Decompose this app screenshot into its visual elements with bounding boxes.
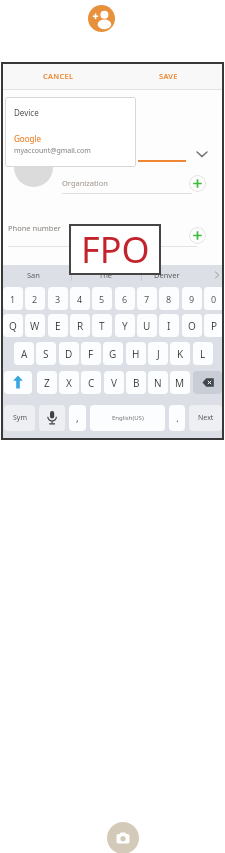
staticText: A [21,347,28,361]
staticText: B [133,376,140,390]
button[interactable]: Z [37,371,57,394]
button[interactable] [189,227,206,244]
button[interactable]: N [148,371,168,394]
staticText: Z [44,376,50,390]
staticText: Sym [13,413,27,423]
button[interactable]: A [14,342,34,365]
button[interactable]: English(US) [90,405,165,431]
staticText: Organization [62,178,108,188]
staticText: FPO [81,225,150,274]
staticText: P [211,319,218,333]
button[interactable]: D [59,342,79,365]
button[interactable]: S [36,342,56,365]
staticText: 8 [166,293,172,305]
button[interactable]: Google [5,129,136,167]
button[interactable]: I [159,314,179,337]
staticText: L [200,347,206,361]
staticText: 0 [211,293,217,305]
staticText: K [177,347,184,361]
button[interactable]: G [103,342,123,365]
button[interactable]: 1 [3,287,23,310]
staticText: , [76,411,79,425]
button[interactable]: The [84,266,128,284]
button[interactable]: X [59,371,79,394]
button[interactable]: J [148,342,168,365]
button[interactable]: Q [3,314,23,337]
staticText: 5 [99,293,105,305]
staticText: 6 [122,293,128,305]
staticText: J [157,347,160,361]
staticText: 4 [77,293,83,305]
staticText: T [99,319,105,333]
button[interactable]: Device [5,97,136,129]
button[interactable]: 9 [182,287,202,310]
staticText: myaccount@gmail.com [14,146,91,156]
button[interactable]: B [126,371,146,394]
button[interactable]: P [204,314,224,337]
staticText: N [154,376,162,390]
staticText: 9 [189,293,195,305]
button[interactable] [4,371,32,394]
staticText: U [143,319,151,333]
staticText: SAVE [159,71,178,81]
staticText: CANCEL [43,71,74,81]
button[interactable]: 7 [137,287,157,310]
button[interactable]: 6 [115,287,135,310]
button[interactable]: Denver [144,266,190,284]
button[interactable]: U [137,314,157,337]
button[interactable]: E [48,314,68,337]
button[interactable]: 3 [48,287,68,310]
button[interactable] [39,405,65,431]
staticText: X [66,376,72,390]
button[interactable]: 8 [159,287,179,310]
button[interactable]: . [169,405,185,431]
staticText: 2 [32,293,38,305]
staticText: M [175,376,185,390]
button[interactable]: W [25,314,45,337]
button[interactable]: 5 [92,287,112,310]
staticText: Phone number [8,223,61,233]
button[interactable]: San [11,266,55,284]
button[interactable]: V [104,371,124,394]
staticText: Denver [154,270,180,280]
staticText: 1 [10,293,16,305]
button[interactable]: Next [189,405,222,431]
button[interactable]: SAVE [140,63,197,89]
staticText: English(US) [112,414,144,422]
button[interactable]: , [69,405,86,431]
staticText: D [65,347,73,361]
button[interactable]: 2 [25,287,45,310]
button[interactable] [107,822,139,853]
staticText: Y [122,319,128,333]
staticText: E [55,319,61,333]
staticText: R [77,319,84,333]
staticText: . [176,411,179,425]
button[interactable]: 4 [70,287,90,310]
staticText: V [111,376,117,390]
button[interactable]: CANCEL [27,63,89,89]
staticText: Device [14,107,39,118]
button[interactable] [193,371,222,394]
staticText: S [43,347,49,361]
button[interactable]: T [92,314,112,337]
button[interactable]: M [170,371,190,394]
button[interactable]: Y [115,314,135,337]
staticText: Google [14,133,41,144]
staticText: H [132,347,140,361]
button[interactable]: F [81,342,101,365]
button[interactable] [189,175,206,192]
button[interactable]: H [126,342,146,365]
staticText: 3 [55,293,61,305]
button[interactable] [88,5,115,32]
staticText: Next [198,413,214,423]
staticText: C [88,376,95,390]
button[interactable]: Sym [4,405,35,431]
button[interactable]: 0 [204,287,224,310]
button[interactable]: K [170,342,190,365]
button[interactable]: O [182,314,202,337]
button[interactable]: R [70,314,90,337]
button[interactable]: C [81,371,101,394]
staticText: I [167,319,171,333]
button[interactable]: L [193,342,213,365]
staticText: W [30,319,40,333]
